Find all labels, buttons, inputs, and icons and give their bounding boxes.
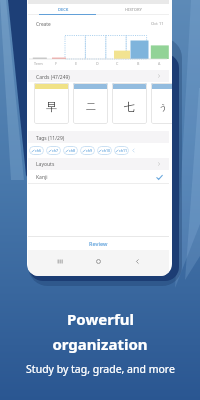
button[interactable]: ぅ [151, 83, 172, 124]
button[interactable]: HISTORY [98, 4, 169, 15]
staticText: 七 [124, 100, 135, 114]
staticText: 早 [46, 100, 57, 114]
button[interactable]: 早 [34, 83, 69, 124]
staticText: Kanji [36, 174, 48, 181]
staticText: ch11 [119, 148, 128, 153]
staticText: 二 [86, 100, 96, 113]
staticText: F [55, 61, 57, 66]
staticText: ch7 [52, 148, 59, 153]
staticText: Cards (47/249) [36, 74, 70, 81]
staticText: ch6 [35, 148, 42, 153]
staticText: Oct 11 [151, 21, 164, 27]
staticText: ch10 [102, 148, 111, 153]
staticText: organization [52, 334, 148, 354]
staticText: C [116, 61, 119, 66]
staticText: ch8 [69, 148, 76, 153]
staticText: Powerful [67, 309, 134, 329]
button[interactable]: 七 [112, 83, 147, 124]
staticText: ch9 [86, 148, 93, 153]
button[interactable]: 二 [73, 83, 108, 124]
staticText: Term [34, 61, 43, 66]
staticText: E [75, 61, 77, 66]
button[interactable]: Recent apps [55, 257, 64, 266]
staticText: DECK [58, 7, 69, 12]
button[interactable]: Layouts [28, 158, 169, 170]
staticText: D [96, 61, 99, 66]
staticText: Tags (11/29) [36, 135, 65, 142]
button[interactable]: Back [133, 257, 142, 266]
staticText: ぅ [158, 100, 169, 113]
staticText: B [137, 61, 140, 66]
staticText: Review [89, 240, 108, 247]
button[interactable]: Kanji [28, 170, 169, 183]
button[interactable]: Home [94, 257, 103, 266]
button[interactable]: Review [28, 237, 169, 250]
button[interactable]: DECK [28, 4, 98, 15]
staticText: HISTORY [125, 7, 142, 12]
staticText: Study by tag, grade, and more [26, 362, 175, 376]
staticText: Layouts [36, 161, 55, 168]
staticText: Create [36, 21, 51, 28]
button[interactable]: Tags (11/29) [28, 131, 169, 143]
button[interactable]: Cards (47/249) [28, 70, 169, 82]
staticText: A [158, 61, 161, 66]
